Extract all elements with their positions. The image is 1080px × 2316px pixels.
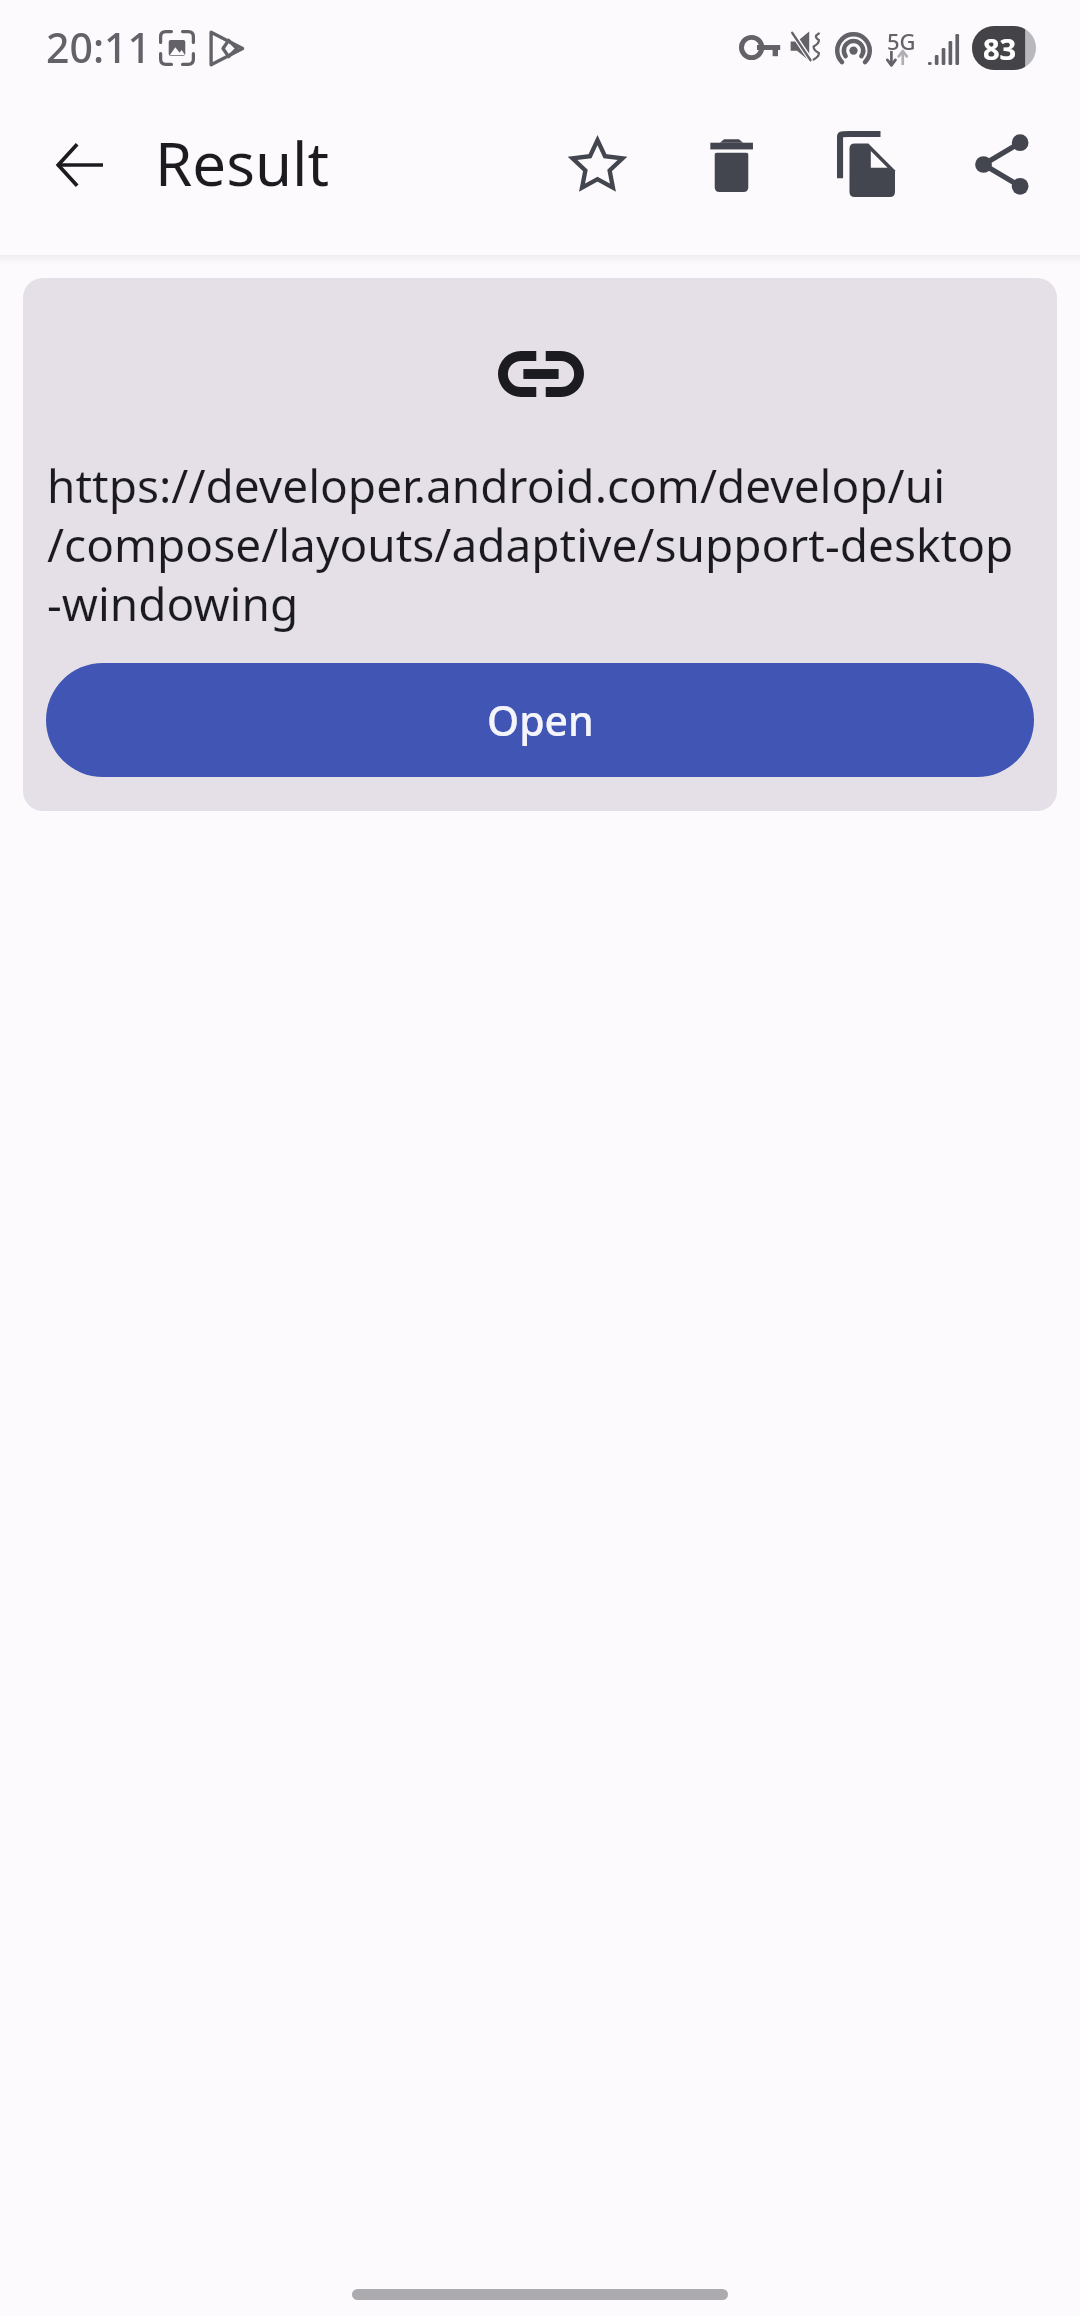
- staticText: https://developer.android.com/develop/ui: [47, 454, 946, 517]
- staticText: Result: [155, 122, 330, 204]
- button[interactable]: Favorite: [549, 118, 645, 214]
- staticText: 83: [983, 29, 1017, 68]
- button[interactable]: Back: [34, 120, 124, 210]
- staticText: 5G: [887, 26, 916, 56]
- button[interactable]: Delete: [683, 115, 779, 211]
- button[interactable]: Copy: [818, 116, 914, 212]
- staticText: -windowing: [47, 572, 299, 635]
- staticText: 20:11: [46, 19, 151, 75]
- staticText: Open: [487, 692, 594, 748]
- button[interactable]: Open: [46, 663, 1034, 777]
- button[interactable]: Share: [956, 116, 1052, 212]
- staticText: /compose/layouts/adaptive/support-deskto…: [47, 513, 1014, 576]
